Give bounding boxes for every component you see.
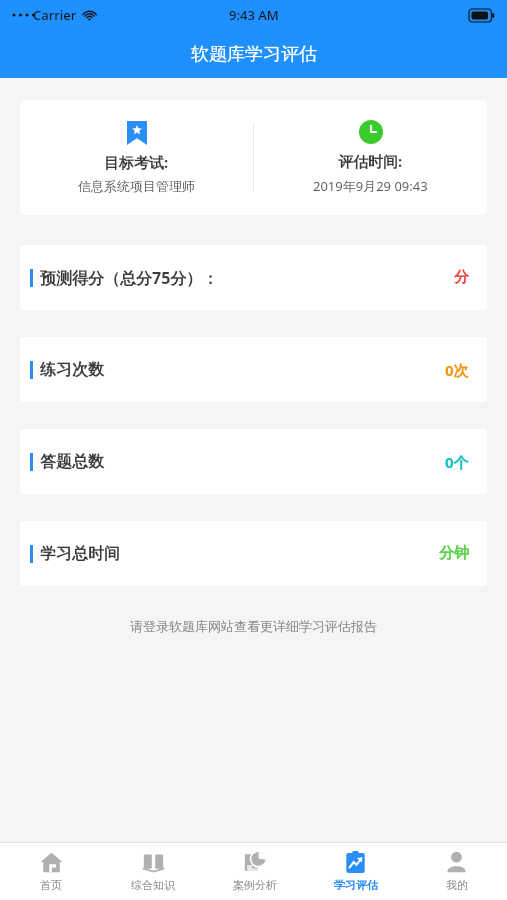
button[interactable]: 学习评估 — [305, 843, 406, 900]
staticText: 信息系统项目管理师 — [78, 178, 195, 194]
staticText: 综合知识 — [131, 878, 175, 892]
staticText: 学习评估 — [334, 878, 378, 892]
staticText: 2019年9月29 09:43 — [313, 177, 428, 195]
staticText: 分钟 — [439, 544, 469, 563]
staticText: 首页 — [40, 878, 62, 892]
staticText: 评估时间: — [338, 151, 403, 171]
button[interactable]: 答题总数 — [20, 429, 487, 494]
button[interactable]: 案例分析 — [204, 843, 305, 900]
staticText: 0次 — [445, 360, 469, 380]
button[interactable]: 目标考试: — [20, 100, 487, 215]
staticText: Carrier — [33, 6, 77, 24]
button[interactable]: 综合知识 — [102, 843, 204, 900]
staticText: 预测得分（总分75分）： — [40, 267, 454, 289]
staticText: 请登录软题库网站查看更详细学习评估报告 — [0, 618, 507, 634]
staticText: 分 — [454, 268, 469, 287]
staticText: 练习次数 — [40, 360, 445, 380]
button[interactable]: 学习总时间 — [20, 521, 487, 586]
staticText: 我的 — [446, 878, 468, 892]
staticText: 9:43 AM — [229, 6, 279, 24]
staticText: 目标考试: — [104, 152, 169, 172]
button[interactable]: 练习次数 — [20, 337, 487, 402]
button[interactable]: 预测得分（总分75分）： — [20, 245, 487, 310]
button[interactable]: 首页 — [0, 843, 102, 900]
staticText: 软题库学习评估 — [191, 43, 317, 66]
staticText: 0个 — [445, 452, 469, 472]
staticText: 学习总时间 — [40, 544, 439, 564]
staticText: 案例分析 — [233, 878, 277, 892]
staticText: 答题总数 — [40, 452, 445, 472]
button[interactable]: 我的 — [406, 843, 507, 900]
